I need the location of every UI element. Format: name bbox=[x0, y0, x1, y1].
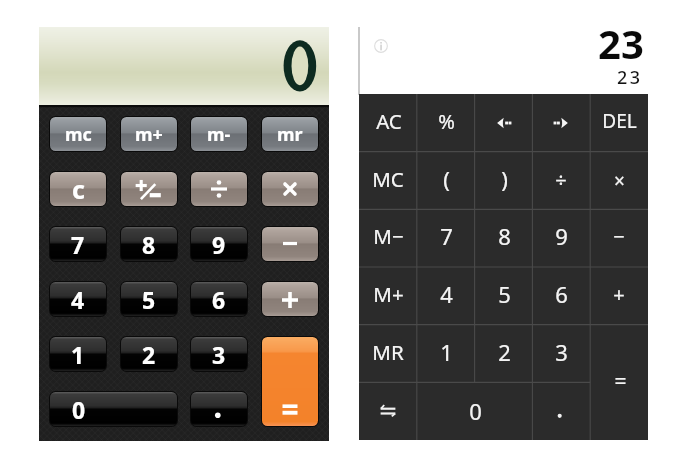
button[interactable]: Plus bbox=[262, 282, 318, 316]
button[interactable]: 8 bbox=[475, 209, 533, 267]
staticText: 9 bbox=[555, 221, 568, 251]
button[interactable]: 7 bbox=[417, 209, 475, 267]
staticText: 23 bbox=[598, 16, 644, 70]
staticText: − bbox=[613, 223, 625, 250]
staticText: 7 bbox=[71, 229, 85, 260]
button[interactable]: DEL bbox=[590, 94, 648, 152]
button[interactable]: 2 bbox=[121, 337, 177, 371]
staticText: mc bbox=[65, 122, 92, 147]
staticText: 3 bbox=[555, 337, 568, 367]
staticText: 1 bbox=[71, 339, 85, 370]
staticText: 1 bbox=[440, 337, 453, 367]
button[interactable]: 9 bbox=[191, 227, 247, 261]
staticText: 2 bbox=[498, 337, 511, 367]
button[interactable]: ÷ bbox=[532, 152, 590, 210]
staticText: DEL bbox=[602, 108, 637, 134]
button[interactable]: = bbox=[590, 325, 648, 440]
button[interactable]: M− bbox=[359, 209, 417, 267]
button[interactable]: 3 bbox=[191, 337, 247, 371]
staticText: M− bbox=[373, 222, 404, 250]
button[interactable]: − bbox=[590, 209, 648, 267]
staticText: 0 bbox=[469, 396, 482, 426]
staticText: % bbox=[438, 108, 455, 135]
button[interactable]: 5 bbox=[475, 267, 533, 325]
staticText: 23 bbox=[617, 65, 643, 87]
staticText: 3 bbox=[212, 339, 226, 370]
button[interactable]: × bbox=[590, 152, 648, 210]
button[interactable]: c bbox=[50, 172, 106, 206]
staticText: ÷ bbox=[555, 166, 567, 193]
button[interactable]: 1 bbox=[417, 325, 475, 383]
staticText: 8 bbox=[498, 221, 511, 251]
staticText: ( bbox=[443, 164, 450, 194]
button[interactable]: 7 bbox=[50, 227, 106, 261]
staticText: c bbox=[72, 172, 85, 206]
button[interactable]: 5 bbox=[121, 282, 177, 316]
button[interactable]: 8 bbox=[121, 227, 177, 261]
staticText: 4 bbox=[71, 284, 85, 315]
button[interactable]: Decimal point bbox=[191, 392, 247, 426]
staticText: 5 bbox=[142, 284, 156, 315]
staticText: 5 bbox=[498, 279, 511, 309]
button[interactable]: Equals bbox=[262, 337, 318, 426]
staticText: M+ bbox=[373, 280, 404, 308]
staticText: 8 bbox=[142, 229, 156, 260]
staticText: 9 bbox=[212, 229, 226, 260]
staticText: m+ bbox=[135, 122, 163, 147]
staticText: MC bbox=[372, 165, 404, 193]
staticText: 6 bbox=[555, 279, 568, 309]
button[interactable]: Move left bbox=[475, 94, 533, 152]
button[interactable]: Move right bbox=[532, 94, 590, 152]
staticText: × bbox=[614, 168, 625, 194]
button[interactable]: m- bbox=[191, 117, 247, 151]
button[interactable]: Info bbox=[367, 32, 395, 60]
staticText: MR bbox=[372, 338, 404, 366]
button[interactable]: 1 bbox=[50, 337, 106, 371]
button[interactable]: mr bbox=[262, 117, 318, 151]
button[interactable]: 6 bbox=[532, 267, 590, 325]
button[interactable]: mc bbox=[50, 117, 106, 151]
button[interactable]: 0 bbox=[417, 382, 533, 440]
staticText: + bbox=[613, 281, 625, 308]
button[interactable]: Divide bbox=[191, 172, 247, 206]
button[interactable]: Decimal point bbox=[532, 382, 590, 440]
button[interactable]: % bbox=[417, 94, 475, 152]
button[interactable]: + bbox=[590, 267, 648, 325]
button[interactable]: MR bbox=[359, 325, 417, 383]
staticText: 2 bbox=[142, 339, 156, 370]
button[interactable]: MC bbox=[359, 152, 417, 210]
staticText: 0 bbox=[72, 394, 86, 425]
button[interactable]: M+ bbox=[359, 267, 417, 325]
staticText: m- bbox=[207, 122, 231, 147]
button[interactable]: AC bbox=[359, 94, 417, 152]
button[interactable]: Multiply bbox=[262, 172, 318, 206]
staticText: 7 bbox=[440, 221, 453, 251]
button[interactable]: 2 bbox=[475, 325, 533, 383]
button[interactable]: 3 bbox=[532, 325, 590, 383]
staticText: mr bbox=[277, 122, 303, 147]
staticText: AC bbox=[376, 107, 402, 135]
button[interactable]: 0 bbox=[50, 392, 177, 426]
button[interactable]: m+ bbox=[121, 117, 177, 151]
button[interactable]: 6 bbox=[191, 282, 247, 316]
button[interactable]: ( bbox=[417, 152, 475, 210]
button[interactable]: 4 bbox=[417, 267, 475, 325]
button[interactable]: Swap bbox=[359, 382, 417, 440]
staticText: 4 bbox=[440, 279, 453, 309]
button[interactable]: 9 bbox=[532, 209, 590, 267]
button[interactable]: ) bbox=[475, 152, 533, 210]
button[interactable]: 4 bbox=[50, 282, 106, 316]
staticText: ) bbox=[501, 164, 508, 194]
button[interactable]: Minus bbox=[262, 227, 318, 261]
staticText: 6 bbox=[212, 284, 226, 315]
staticText: = bbox=[614, 367, 627, 396]
button[interactable]: Plus minus bbox=[121, 172, 177, 206]
